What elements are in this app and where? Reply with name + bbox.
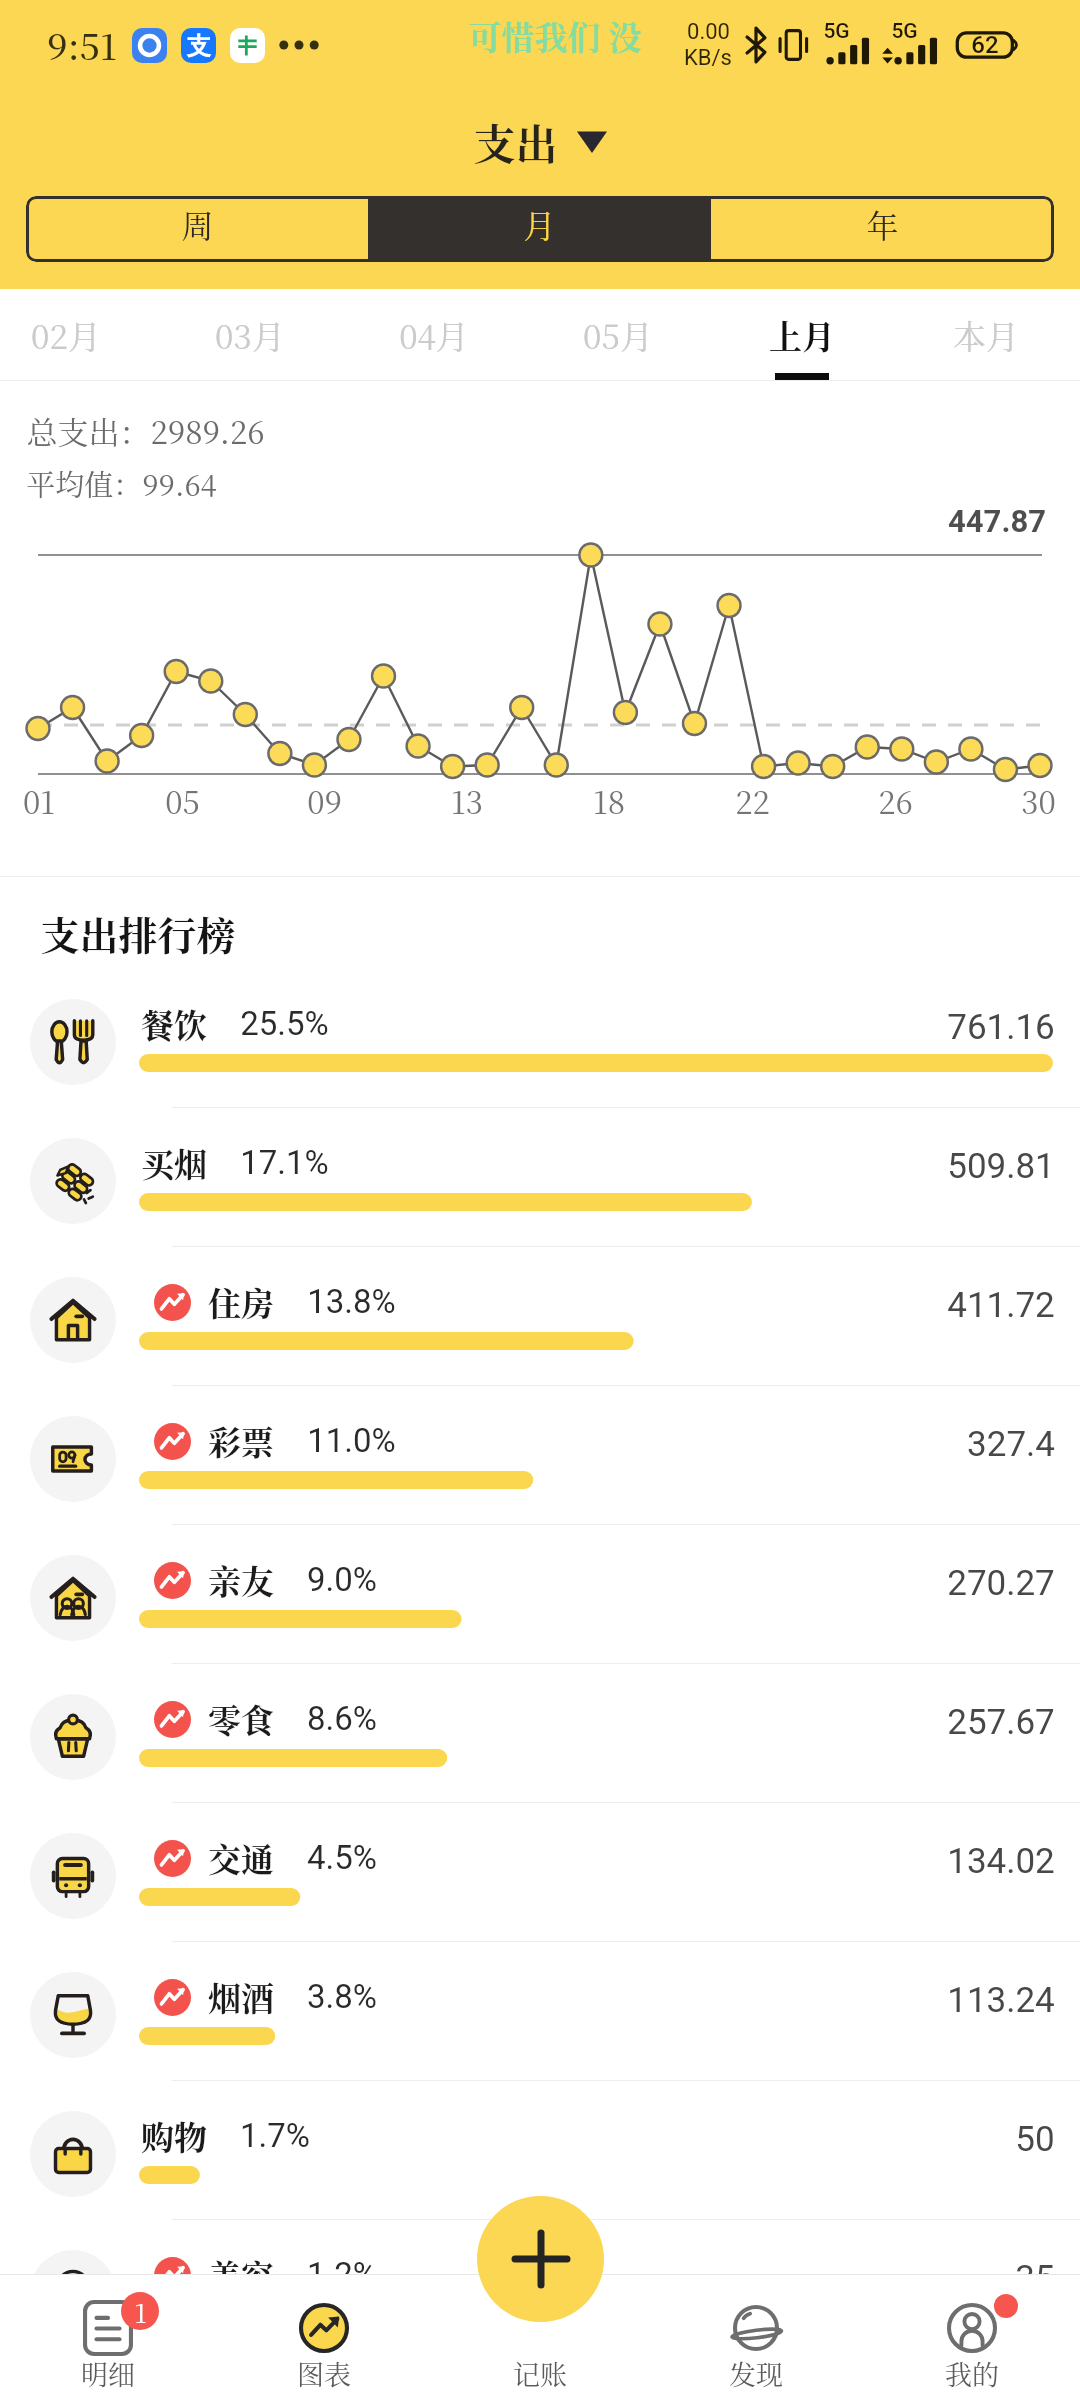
button[interactable]: 05月 xyxy=(528,289,708,381)
button[interactable]: 04月 xyxy=(344,289,524,381)
staticText: 411.72 xyxy=(947,1285,1055,1326)
staticText: 明细 xyxy=(81,2354,135,2393)
staticText: 住房 xyxy=(208,1278,274,1325)
staticText: 交通 xyxy=(208,1834,274,1881)
staticText: 9.0% xyxy=(307,1560,377,1599)
staticText: 447.87 xyxy=(948,503,1046,539)
staticText: 35 xyxy=(1015,2258,1055,2299)
staticText: 257.67 xyxy=(947,1702,1055,1743)
button[interactable]: 1 xyxy=(0,2274,216,2400)
staticText: 餐饮 xyxy=(141,1000,207,1047)
staticText: 买烟 xyxy=(141,1139,207,1186)
staticText: 1.7% xyxy=(240,2116,310,2155)
staticText: 62 xyxy=(971,31,999,59)
staticText: 月 xyxy=(523,201,556,247)
staticText: 22 xyxy=(735,778,770,823)
button[interactable]: 周 xyxy=(26,196,368,262)
staticText: 01 xyxy=(23,778,55,823)
staticText: 上月 xyxy=(769,311,835,358)
staticText: 113.24 xyxy=(947,1980,1055,2021)
staticText: 26 xyxy=(878,778,913,823)
staticText: 761.16 xyxy=(947,1007,1055,1048)
button[interactable]: 记账 xyxy=(432,2274,648,2400)
staticText: 可惜我们 没 xyxy=(468,12,642,59)
staticText: 彩票 xyxy=(208,1417,274,1464)
staticText: 本月 xyxy=(953,311,1019,358)
staticText: 支出排行榜 xyxy=(40,905,236,961)
staticText: 图表 xyxy=(297,2354,351,2393)
button[interactable]: 买烟 xyxy=(0,1108,1080,1247)
staticText: 零食 xyxy=(208,1695,274,1742)
staticText: 5G xyxy=(891,19,918,44)
staticText: 1 xyxy=(134,2293,147,2330)
button[interactable]: 亲友 xyxy=(0,1525,1080,1664)
button[interactable]: 月 xyxy=(368,196,711,262)
staticText: 年 xyxy=(866,201,899,247)
staticText: 9:51 xyxy=(47,19,117,71)
staticText: 134.02 xyxy=(947,1841,1055,1882)
button[interactable]: 餐饮 xyxy=(0,969,1080,1108)
staticText: 烟酒 xyxy=(208,1973,274,2020)
button[interactable]: 彩票 xyxy=(0,1386,1080,1525)
button[interactable]: 支出 xyxy=(457,108,624,176)
staticText: 记账 xyxy=(513,2354,567,2393)
staticText: 总支出：2989.26 xyxy=(26,408,265,453)
button[interactable]: 图表 xyxy=(216,2274,432,2400)
staticText: 0.00 xyxy=(687,19,730,45)
staticText: 8.6% xyxy=(307,1699,377,1738)
button[interactable]: 年 xyxy=(711,196,1054,262)
button[interactable]: 交通 xyxy=(0,1803,1080,1942)
button[interactable]: 我的 xyxy=(864,2274,1080,2400)
staticText: 509.81 xyxy=(947,1146,1055,1187)
staticText: 1.2% xyxy=(307,2255,377,2294)
button[interactable]: 购物 xyxy=(0,2081,1080,2220)
staticText: 美容 xyxy=(208,2251,274,2298)
button[interactable]: 本月 xyxy=(896,289,1076,381)
staticText: 支出 xyxy=(473,112,558,172)
staticText: 04月 xyxy=(399,311,469,358)
staticText: KB/s xyxy=(684,45,732,71)
button[interactable]: 03月 xyxy=(160,289,340,381)
staticText: 30 xyxy=(1021,778,1056,823)
button[interactable]: 上月 xyxy=(712,289,892,381)
staticText: 13.8% xyxy=(307,1282,396,1321)
staticText: 5G xyxy=(823,19,850,44)
staticText: 我的 xyxy=(945,2354,999,2393)
staticText: 周 xyxy=(181,201,214,247)
button[interactable]: 02月 xyxy=(0,289,156,381)
staticText: 17.1% xyxy=(240,1143,329,1182)
staticText: 3.8% xyxy=(307,1977,377,2016)
staticText: 支 xyxy=(187,31,211,61)
staticText: 购物 xyxy=(141,2112,207,2159)
staticText: 亲友 xyxy=(208,1556,274,1603)
staticText: 发现 xyxy=(729,2354,783,2393)
staticText: 327.4 xyxy=(967,1424,1055,1465)
staticText: 09 xyxy=(307,778,342,823)
button[interactable]: 住房 xyxy=(0,1247,1080,1386)
button[interactable]: 烟酒 xyxy=(0,1942,1080,2081)
staticText: 03月 xyxy=(215,311,285,358)
staticText: 平均值：99.64 xyxy=(26,463,217,505)
staticText: 25.5% xyxy=(240,1004,329,1043)
staticText: 270.27 xyxy=(947,1563,1055,1604)
button[interactable]: 美容 xyxy=(0,2220,1080,2359)
button[interactable]: 记账 xyxy=(477,2196,604,2322)
staticText: 05月 xyxy=(583,311,653,358)
staticText: 50 xyxy=(1015,2119,1055,2160)
staticText: 18 xyxy=(593,778,625,823)
staticText: 11.0% xyxy=(307,1421,396,1460)
staticText: 05 xyxy=(165,778,200,823)
staticText: 02月 xyxy=(31,311,101,358)
button[interactable]: 零食 xyxy=(0,1664,1080,1803)
staticText: 4.5% xyxy=(307,1838,377,1877)
staticText: 13 xyxy=(451,778,483,823)
button[interactable]: 发现 xyxy=(648,2274,864,2400)
